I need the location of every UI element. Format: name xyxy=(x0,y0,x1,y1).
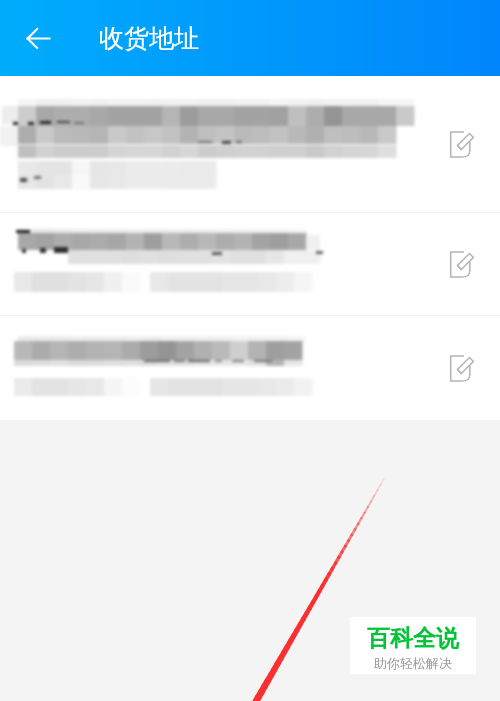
button[interactable]: Edit address xyxy=(442,242,486,286)
button[interactable]: Back xyxy=(15,15,61,61)
button[interactable]: Edit address xyxy=(442,346,486,390)
button[interactable]: Edit address xyxy=(442,122,486,166)
button[interactable]: Edit address xyxy=(0,213,500,315)
staticText: 百科全说 xyxy=(367,624,459,653)
button[interactable]: Edit address xyxy=(0,76,500,212)
button[interactable]: Edit address xyxy=(0,316,500,420)
staticText: 助你轻松解决 xyxy=(374,655,452,671)
staticText: 收货地址 xyxy=(99,23,199,54)
